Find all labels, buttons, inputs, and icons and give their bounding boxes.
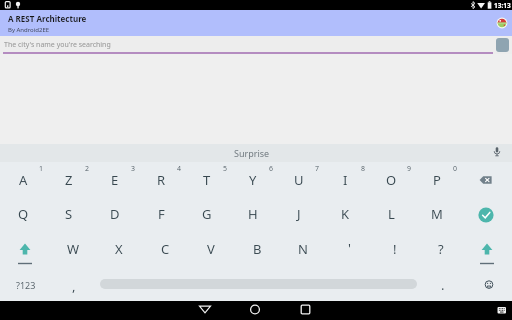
staticText: , xyxy=(72,277,76,295)
button[interactable]: B xyxy=(235,234,279,264)
staticText: K xyxy=(341,205,350,223)
staticText: R xyxy=(157,171,166,189)
staticText: By Android2EE xyxy=(8,26,50,34)
staticText: The city's name you're searching xyxy=(4,40,111,50)
staticText: A xyxy=(19,171,28,189)
button[interactable]: T xyxy=(185,165,229,195)
staticText: . xyxy=(441,276,445,294)
button[interactable]: G xyxy=(185,199,229,229)
staticText: Y xyxy=(249,171,257,189)
staticText: H xyxy=(248,205,258,223)
staticText: ! xyxy=(393,240,397,258)
button[interactable]: W xyxy=(51,234,95,264)
button[interactable]: U xyxy=(277,165,321,195)
button[interactable]: , xyxy=(52,271,96,301)
staticText: O xyxy=(386,171,397,189)
staticText: B xyxy=(253,240,262,258)
button[interactable]: F xyxy=(139,199,183,229)
staticText: 2 xyxy=(85,164,90,174)
button[interactable]: S xyxy=(47,199,91,229)
staticText: T xyxy=(203,171,211,189)
button[interactable]: O xyxy=(369,165,413,195)
button[interactable]: Q xyxy=(1,199,45,229)
button[interactable] xyxy=(245,301,265,320)
staticText: D xyxy=(110,205,120,223)
staticText: E xyxy=(111,171,119,189)
button[interactable] xyxy=(466,270,510,299)
staticText: P xyxy=(433,171,441,189)
button[interactable]: A xyxy=(1,165,45,195)
button[interactable]: K xyxy=(323,199,367,229)
button[interactable]: V xyxy=(189,234,233,264)
staticText: N xyxy=(298,240,308,258)
staticText: L xyxy=(388,205,395,223)
staticText: F xyxy=(158,205,165,223)
button[interactable]: H xyxy=(231,199,275,229)
staticText: M xyxy=(431,205,443,223)
button[interactable] xyxy=(464,200,510,229)
staticText: S xyxy=(65,205,73,223)
staticText: U xyxy=(294,171,304,189)
button[interactable] xyxy=(464,165,510,194)
button[interactable]: N xyxy=(281,234,325,264)
button[interactable]: ' xyxy=(327,233,371,263)
button[interactable] xyxy=(464,235,510,264)
button[interactable]: Y xyxy=(231,165,275,195)
staticText: C xyxy=(161,240,170,258)
button[interactable]: Surprise xyxy=(0,144,512,162)
button[interactable]: P xyxy=(415,165,459,195)
button[interactable]: ? xyxy=(419,234,463,264)
staticText: V xyxy=(207,240,215,258)
button[interactable]: ?123 xyxy=(4,270,48,300)
staticText: 9 xyxy=(407,164,412,174)
staticText: ? xyxy=(438,240,444,258)
staticText: X xyxy=(115,240,123,258)
staticText: 3 xyxy=(131,164,136,174)
button[interactable] xyxy=(492,301,512,320)
staticText: 8 xyxy=(361,164,366,174)
button[interactable]: L xyxy=(369,199,413,229)
button[interactable] xyxy=(496,38,509,52)
button[interactable]: X xyxy=(97,234,141,264)
staticText: ?123 xyxy=(16,279,36,291)
button[interactable]: D xyxy=(93,199,137,229)
button[interactable]: R xyxy=(139,165,183,195)
staticText: 5 xyxy=(223,164,228,174)
button[interactable]: J xyxy=(277,199,321,229)
button[interactable] xyxy=(295,301,315,320)
staticText: 7 xyxy=(315,164,320,174)
staticText: 4 xyxy=(177,164,182,174)
button[interactable]: Z xyxy=(47,165,91,195)
button[interactable] xyxy=(195,301,215,320)
button[interactable]: . xyxy=(421,270,465,300)
staticText: I xyxy=(343,171,348,189)
staticText: Q xyxy=(18,205,29,223)
button[interactable]: ! xyxy=(373,234,417,264)
button[interactable]: E xyxy=(93,165,137,195)
button[interactable]: M xyxy=(415,199,459,229)
staticText: 13:13 xyxy=(494,1,511,10)
staticText: Surprise xyxy=(234,147,270,159)
button[interactable]: C xyxy=(143,234,187,264)
staticText: J xyxy=(297,205,301,223)
staticText: G xyxy=(202,205,212,223)
staticText: W xyxy=(67,240,80,258)
staticText: Z xyxy=(65,171,73,189)
button[interactable] xyxy=(494,15,510,31)
staticText: ' xyxy=(348,239,351,257)
staticText: 6 xyxy=(269,164,274,174)
staticText: 0 xyxy=(453,164,458,174)
button[interactable]: I xyxy=(323,165,367,195)
button[interactable]: The city's name you're searching xyxy=(0,36,512,54)
staticText: 1 xyxy=(39,164,44,174)
button[interactable] xyxy=(2,235,48,264)
staticText: A REST Architecture xyxy=(8,13,87,24)
